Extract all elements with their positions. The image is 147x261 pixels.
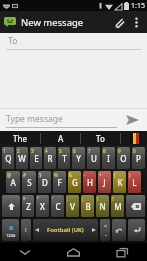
button[interactable]: J — [98, 171, 111, 193]
staticText: 2 — [17, 148, 20, 154]
button[interactable]: To — [81, 131, 120, 145]
staticText: " — [37, 196, 39, 202]
button[interactable]: More options — [128, 14, 144, 30]
button[interactable]: V — [66, 195, 79, 217]
button[interactable]: D — [38, 171, 51, 193]
button[interactable]: N — [96, 195, 109, 217]
staticText: ; — [82, 196, 84, 202]
button[interactable]: Delete — [126, 195, 145, 217]
staticText: To — [8, 35, 18, 47]
staticText: . — [105, 230, 107, 238]
button[interactable]: Symbols — [2, 219, 19, 241]
staticText: N — [99, 201, 106, 212]
staticText: 9 — [118, 148, 121, 154]
staticText: U — [91, 153, 97, 164]
staticText: Q — [5, 153, 12, 164]
staticText: - — [84, 172, 86, 178]
button[interactable]: M — [111, 195, 124, 217]
button[interactable]: W — [16, 147, 28, 169]
button[interactable]: Undo — [112, 219, 126, 241]
button[interactable]: Send — [123, 111, 141, 129]
staticText: ' — [52, 196, 54, 202]
staticText: T — [62, 153, 67, 164]
staticText: 6 — [73, 148, 76, 154]
staticText: ) — [129, 172, 131, 178]
staticText: A — [58, 133, 64, 144]
staticText: S — [27, 177, 32, 188]
button[interactable]: Hide keyboard — [0, 243, 49, 261]
button[interactable]: T — [58, 147, 70, 169]
staticText: 123# — [6, 233, 16, 238]
staticText: Football (UK) — [47, 226, 84, 234]
button[interactable]: Enter — [128, 219, 145, 241]
button[interactable]: Messaging app icon — [3, 15, 17, 29]
staticText: I — [107, 153, 110, 164]
button[interactable]: Period — [100, 219, 110, 241]
button[interactable]: Recents — [98, 243, 147, 261]
staticText: # — [23, 172, 26, 178]
staticText: D — [42, 177, 48, 188]
button[interactable]: A — [6, 171, 20, 193]
button[interactable]: I — [102, 147, 115, 169]
button[interactable]: B — [81, 195, 94, 217]
button[interactable]: F — [53, 171, 66, 193]
staticText: 7 — [88, 148, 91, 154]
button[interactable]: Space — [33, 219, 98, 241]
staticText: 3 — [31, 148, 34, 154]
button[interactable]: To — [8, 33, 139, 49]
staticText: % — [54, 172, 58, 178]
button[interactable]: Home — [49, 243, 98, 261]
staticText: V — [70, 201, 75, 212]
button[interactable]: Attach — [110, 13, 128, 31]
staticText: $ — [39, 172, 42, 178]
staticText: 1 — [3, 148, 6, 154]
staticText: * — [23, 196, 26, 202]
staticText: Type message — [6, 113, 63, 125]
staticText: O — [120, 153, 127, 164]
staticText: Y — [76, 153, 81, 164]
staticText: C — [55, 201, 61, 212]
button[interactable]: Type message — [6, 113, 117, 128]
button[interactable]: C — [51, 195, 64, 217]
staticText: < — [104, 223, 107, 230]
button[interactable]: X — [36, 195, 49, 217]
staticText: L — [132, 177, 137, 188]
button[interactable]: The — [0, 131, 40, 145]
button[interactable]: R — [44, 147, 56, 169]
button[interactable]: O — [117, 147, 130, 169]
button[interactable]: Language — [121, 131, 147, 145]
staticText: 0 — [133, 148, 136, 154]
staticText: & — [69, 172, 73, 178]
staticText: : — [67, 196, 69, 202]
staticText: To — [96, 133, 105, 144]
staticText: + — [99, 172, 102, 178]
staticText: ! — [97, 196, 99, 202]
button[interactable]: Q — [2, 147, 14, 169]
staticText: G — [72, 177, 78, 188]
button[interactable]: A — [41, 131, 80, 145]
staticText: P — [136, 153, 141, 164]
button[interactable]: E — [30, 147, 42, 169]
button[interactable]: Shift — [2, 195, 20, 217]
staticText: B — [85, 201, 91, 212]
staticText: 1:15 — [131, 1, 145, 11]
button[interactable]: H — [83, 171, 96, 193]
staticText: H — [87, 177, 93, 188]
button[interactable]: P — [132, 147, 145, 169]
button[interactable]: L — [128, 171, 141, 193]
staticText: 5 — [59, 148, 62, 154]
button[interactable]: G — [68, 171, 81, 193]
staticText: E — [34, 153, 39, 164]
staticText: a — [9, 223, 14, 233]
button[interactable]: K — [113, 171, 126, 193]
staticText: ( — [114, 172, 116, 178]
button[interactable]: Y — [72, 147, 85, 169]
staticText: J — [103, 177, 106, 188]
button[interactable]: Z — [22, 195, 34, 217]
staticText: X — [40, 201, 45, 212]
button[interactable]: S — [22, 171, 36, 193]
button[interactable]: Comma — [21, 219, 31, 241]
staticText: F — [57, 177, 62, 188]
staticText: K — [117, 177, 123, 188]
button[interactable]: U — [87, 147, 100, 169]
